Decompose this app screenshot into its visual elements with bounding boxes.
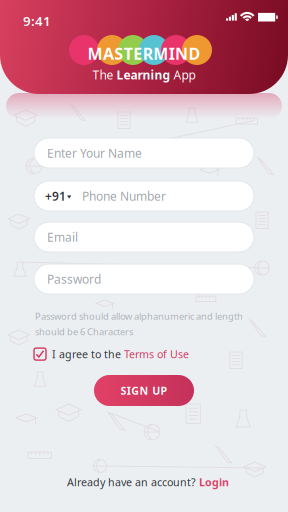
staticText: Email — [47, 229, 78, 245]
staticText: I agree to the — [52, 347, 124, 361]
button[interactable]: Email — [34, 222, 254, 252]
button[interactable]: Already have an account? — [67, 475, 229, 489]
staticText: Enter Your Name — [47, 145, 142, 161]
staticText: SIGN UP — [120, 383, 168, 398]
staticText: Password — [47, 271, 101, 287]
staticText: Already have an account? — [67, 475, 199, 489]
staticText: The — [92, 67, 116, 83]
staticText: Password should allow alphanumeric and l… — [35, 310, 243, 322]
staticText: MASTERMIND — [87, 43, 201, 64]
staticText: App — [173, 67, 195, 83]
staticText: Phone Number — [82, 188, 166, 204]
button[interactable]: Password — [34, 264, 254, 294]
button[interactable]: Enter Your Name — [34, 138, 254, 168]
staticText: should be 6 Characters — [35, 325, 133, 338]
button[interactable]: +91 — [34, 181, 254, 211]
button[interactable]: I agree to the — [34, 347, 189, 361]
button[interactable]: SIGN UP — [94, 375, 194, 406]
staticText: Terms of Use — [124, 347, 189, 361]
staticText: +91 — [45, 188, 66, 204]
staticText: 9:41 — [23, 12, 51, 30]
staticText: Login — [199, 475, 229, 489]
staticText: Learning — [116, 67, 173, 83]
